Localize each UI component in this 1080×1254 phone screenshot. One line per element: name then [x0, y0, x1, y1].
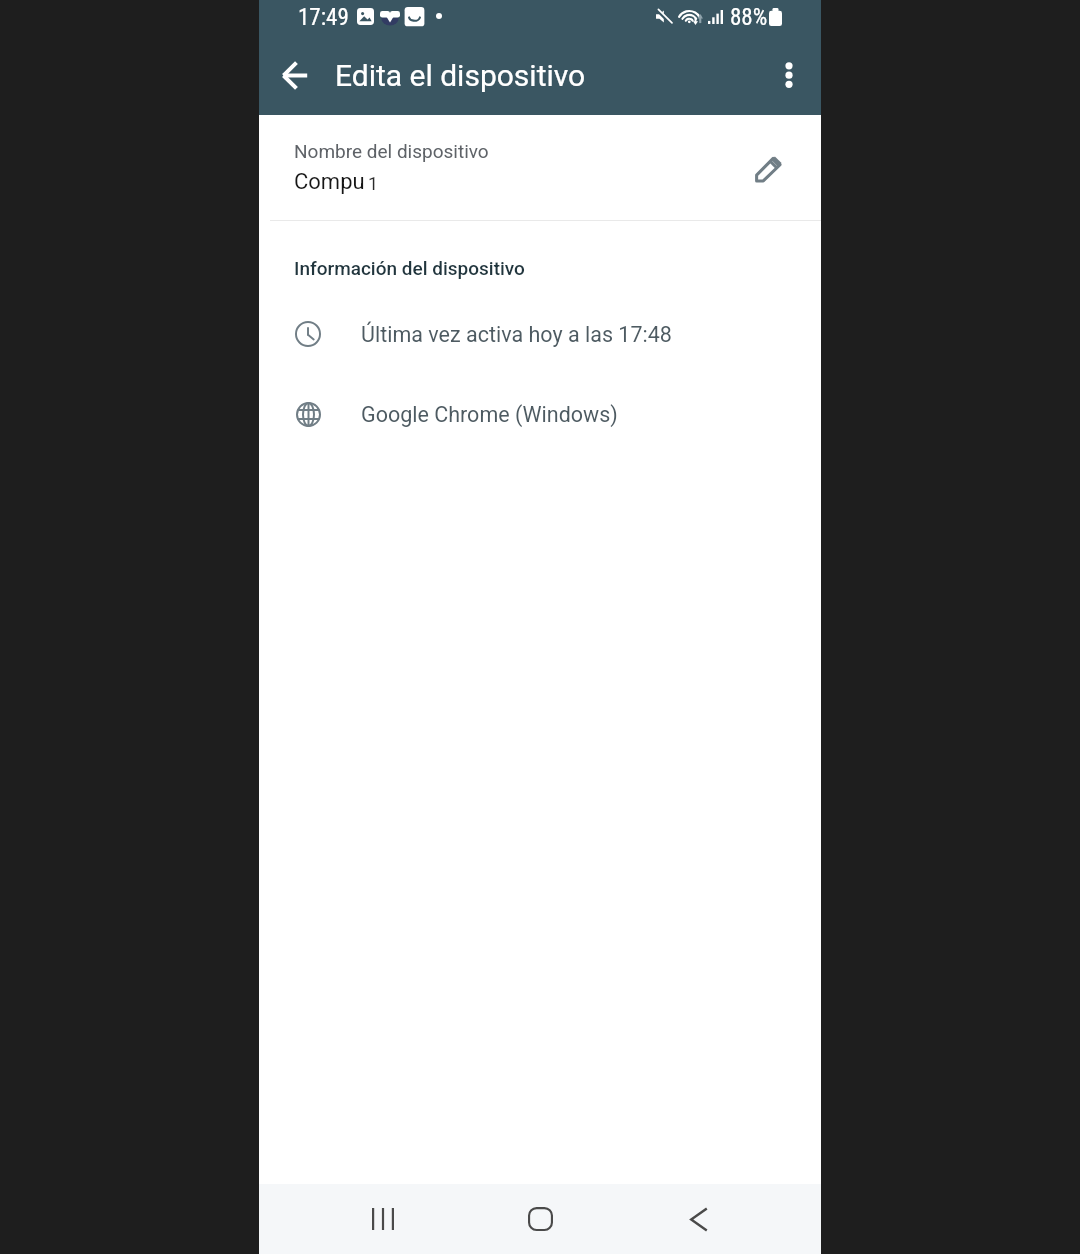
staticText: Información del dispositivo: [294, 257, 525, 279]
button[interactable]: Edit name: [744, 144, 792, 192]
button[interactable]: Home: [487, 1184, 593, 1254]
button[interactable]: Google Chrome (Windows): [259, 394, 821, 434]
staticText: Edita el dispositivo: [335, 58, 586, 93]
staticText: 88%: [730, 4, 768, 31]
button[interactable]: Back: [268, 49, 320, 101]
staticText: Compu: [294, 169, 365, 195]
button[interactable]: More options: [763, 51, 815, 103]
button[interactable]: Última vez activa hoy a las 17:48: [259, 314, 821, 354]
staticText: Última vez activa hoy a las 17:48: [361, 322, 672, 347]
staticText: Nombre del dispositivo: [294, 140, 489, 162]
staticText: 17:49: [298, 4, 349, 31]
button[interactable]: Nombre del dispositivo: [259, 115, 821, 220]
staticText: Google Chrome (Windows): [361, 402, 618, 427]
button[interactable]: Back: [645, 1184, 751, 1254]
button[interactable]: Recent apps: [330, 1184, 436, 1254]
staticText: 1: [368, 173, 379, 194]
